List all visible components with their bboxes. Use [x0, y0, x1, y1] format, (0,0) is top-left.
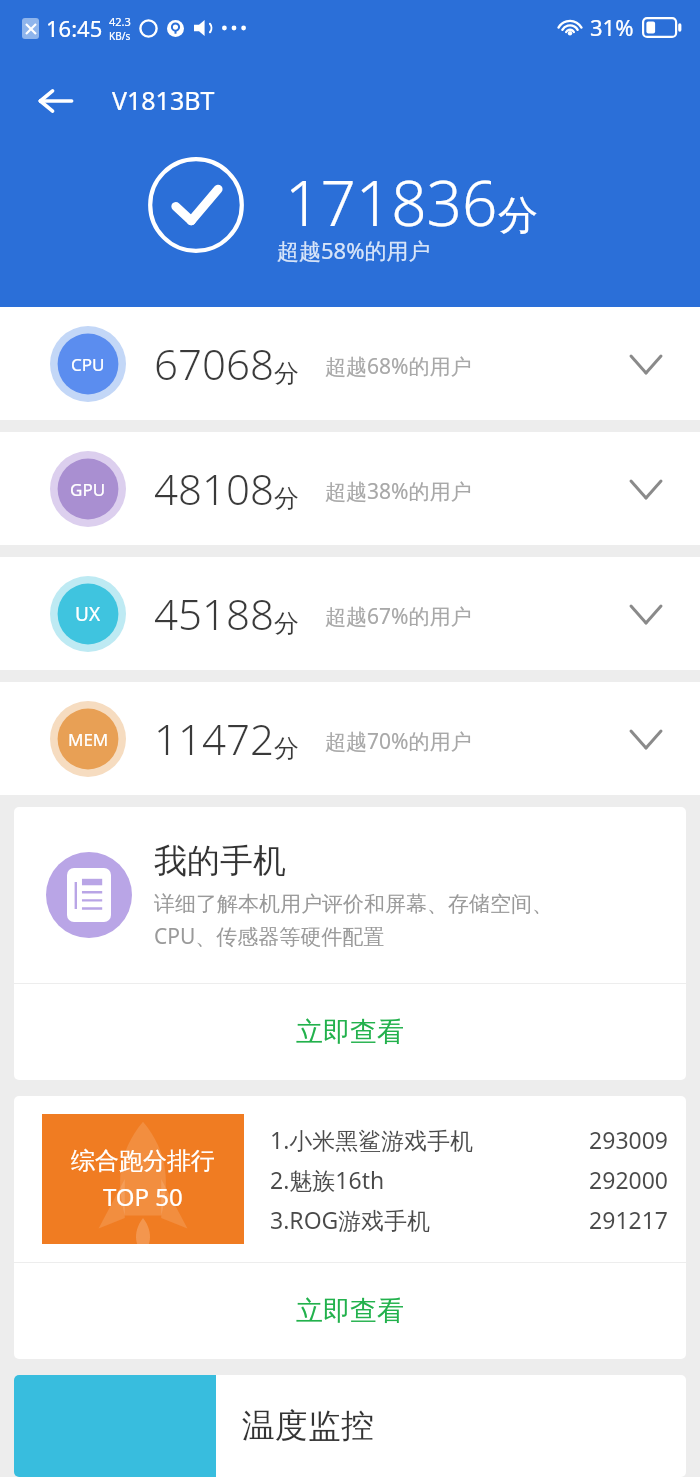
- button[interactable]: 立即查看: [14, 1263, 686, 1359]
- button[interactable]: UX: [0, 557, 700, 670]
- staticText: 超越38%的用户: [325, 477, 472, 506]
- staticText: V1813BT: [112, 83, 215, 117]
- staticText: 42.3: [109, 14, 131, 29]
- staticText: 67068: [154, 335, 274, 392]
- button[interactable]: 综合跑分排行: [14, 1096, 686, 1262]
- button[interactable]: 我的手机: [14, 807, 686, 983]
- staticText: MEM: [68, 728, 109, 751]
- staticText: 详细了解本机用户评价和屏幕、存储空间、 CPU、传感器等硬件配置: [154, 891, 553, 950]
- staticText: 温度监控: [242, 1405, 374, 1447]
- button[interactable]: Expand GPU: [610, 453, 682, 525]
- staticText: 分: [498, 190, 538, 240]
- staticText: 293009: [589, 1124, 668, 1155]
- button[interactable]: Expand MEM: [610, 703, 682, 775]
- staticText: 31%: [590, 12, 634, 42]
- staticText: 立即查看: [296, 1294, 404, 1328]
- button[interactable]: 立即查看: [14, 984, 686, 1080]
- staticText: 立即查看: [296, 1015, 404, 1049]
- button[interactable]: Expand UX: [610, 578, 682, 650]
- staticText: GPU: [70, 478, 106, 501]
- staticText: UX: [75, 601, 101, 627]
- button[interactable]: CPU: [0, 307, 700, 420]
- staticText: 超越67%的用户: [325, 602, 472, 631]
- staticText: CPU: [71, 353, 105, 376]
- staticText: 11472: [154, 710, 274, 767]
- staticText: 292000: [589, 1164, 668, 1195]
- staticText: 超越70%的用户: [325, 727, 472, 756]
- staticText: 综合跑分排行: [71, 1146, 215, 1176]
- staticText: 1.小米黑鲨游戏手机: [270, 1124, 474, 1155]
- button[interactable]: 温度监控: [14, 1375, 686, 1477]
- staticText: 3.ROG游戏手机: [270, 1204, 431, 1235]
- button[interactable]: GPU: [0, 432, 700, 545]
- staticText: 超越68%的用户: [325, 352, 472, 381]
- staticText: KB/s: [109, 29, 131, 43]
- button[interactable]: MEM: [0, 682, 700, 795]
- staticText: 16:45: [46, 13, 103, 43]
- staticText: 45188: [154, 585, 274, 642]
- staticText: 分: [274, 358, 299, 389]
- staticText: 超越58%的用户: [277, 235, 431, 265]
- button[interactable]: Expand CPU: [610, 328, 682, 400]
- staticText: 2.魅族16th: [270, 1164, 385, 1195]
- staticText: 171836: [285, 160, 498, 244]
- staticText: 291217: [589, 1204, 668, 1235]
- staticText: 分: [274, 608, 299, 639]
- staticText: 分: [274, 733, 299, 764]
- staticText: 我的手机: [154, 840, 286, 882]
- button[interactable]: Back: [30, 75, 82, 127]
- staticText: 48108: [154, 460, 274, 517]
- staticText: TOP 50: [103, 1180, 183, 1213]
- staticText: 分: [274, 483, 299, 514]
